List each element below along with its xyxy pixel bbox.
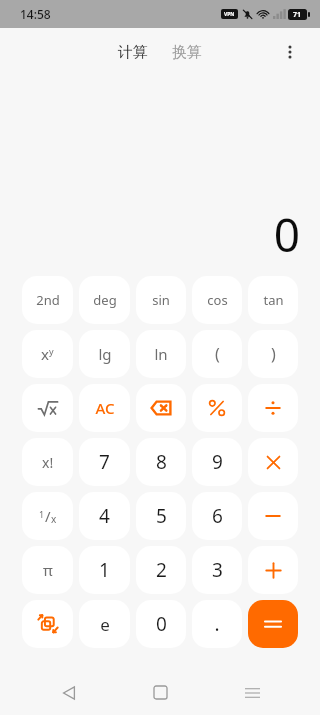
staticText: lg [98,344,112,364]
staticText: AC [95,398,115,418]
button[interactable]: Square root [22,384,73,432]
button[interactable]: 8 [136,438,186,486]
staticText: ) [271,343,276,365]
button[interactable]: AC [79,384,130,432]
staticText: 14:58 [20,6,51,22]
button[interactable]: Multiply [248,438,298,486]
staticText: 0 [273,203,300,266]
button[interactable]: 3 [192,546,242,594]
staticText: y [49,345,54,357]
button[interactable]: 换算 [166,39,208,66]
button[interactable]: Recent apps [229,670,275,715]
staticText: 1 [99,557,110,583]
staticText: x [41,344,49,364]
button[interactable]: 1 [79,546,130,594]
button[interactable]: 5 [136,492,186,540]
button[interactable]: π [22,546,73,594]
staticText: x! [42,453,54,472]
button[interactable]: Reciprocal [22,492,73,540]
staticText: 71 [293,10,302,20]
staticText: cos [207,291,228,309]
staticText: 6 [212,503,223,529]
staticText: 5 [156,503,167,529]
staticText: 1 [39,508,45,520]
staticText: sin [152,291,170,309]
button[interactable]: Factorial [22,438,73,486]
button[interactable]: ) [248,330,298,378]
button[interactable]: 0 [136,600,186,648]
button[interactable]: sin [136,276,186,324]
button[interactable]: 7 [79,438,130,486]
staticText: π [43,560,53,580]
staticText: e [100,613,110,636]
button[interactable]: 2 [136,546,186,594]
button[interactable]: . [192,600,242,648]
button[interactable]: Equals [248,600,298,648]
button[interactable]: ( [192,330,242,378]
button[interactable]: Percent [192,384,242,432]
staticText: VPN [224,11,235,18]
button[interactable]: tan [248,276,298,324]
button[interactable]: Back [46,670,92,715]
staticText: 计算 [118,43,148,62]
button[interactable]: 计算 [112,39,154,66]
staticText: 9 [212,449,223,475]
button[interactable]: 2nd [22,276,73,324]
staticText: 2nd [36,291,60,309]
button[interactable]: More options [272,34,308,70]
staticText: x [51,512,57,526]
button[interactable]: lg [79,330,130,378]
staticText: ( [215,343,220,365]
button[interactable]: e [79,600,130,648]
button[interactable]: Minus [248,492,298,540]
staticText: 0 [156,611,167,637]
button[interactable]: deg [79,276,130,324]
button[interactable]: 9 [192,438,242,486]
staticText: / [45,506,51,526]
staticText: tan [263,291,284,309]
staticText: 3 [212,557,223,583]
button[interactable]: Divide [248,384,298,432]
button[interactable]: 6 [192,492,242,540]
button[interactable]: cos [192,276,242,324]
staticText: 7 [99,449,110,475]
button[interactable]: Backspace [136,384,186,432]
button[interactable]: Plus [248,546,298,594]
staticText: 4 [99,503,110,529]
staticText: . [214,611,220,637]
button[interactable]: 4 [79,492,130,540]
staticText: ln [154,344,168,364]
button[interactable]: Home [137,670,183,715]
button[interactable]: ln [136,330,186,378]
button[interactable]: Unit conversion [22,600,73,648]
staticText: 换算 [172,43,202,62]
staticText: deg [93,291,117,309]
button[interactable]: x to the power of y [22,330,73,378]
staticText: 2 [156,557,167,583]
staticText: 8 [156,449,167,475]
